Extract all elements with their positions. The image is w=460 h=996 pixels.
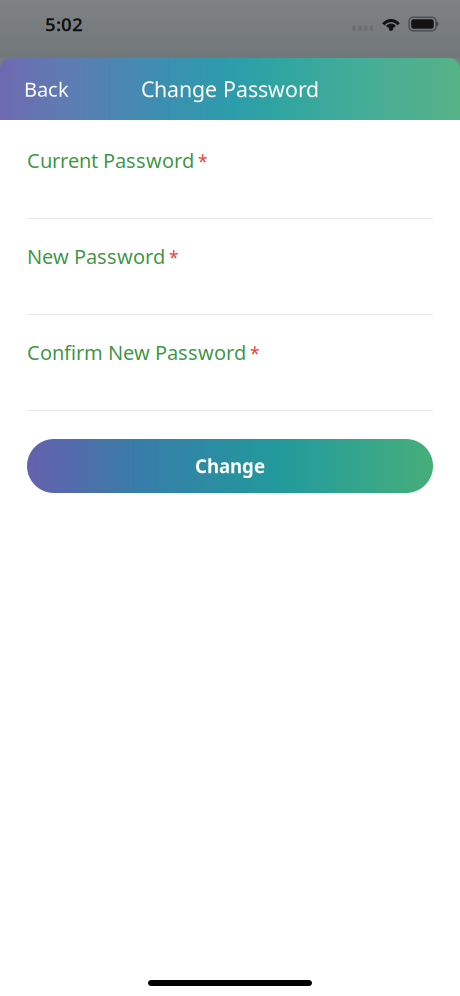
staticText: Confirm New Password xyxy=(27,339,246,366)
staticText: Change Password xyxy=(141,75,319,103)
staticText: * xyxy=(198,150,208,173)
staticText: Change xyxy=(195,454,265,478)
button[interactable]: Change xyxy=(27,439,433,493)
staticText: * xyxy=(250,342,260,365)
staticText: New Password xyxy=(27,243,165,270)
staticText: 5:02 xyxy=(45,12,83,36)
staticText: * xyxy=(169,246,179,269)
staticText: Back xyxy=(24,76,69,102)
button[interactable]: Back xyxy=(0,64,85,114)
staticText: Current Password xyxy=(27,147,194,174)
